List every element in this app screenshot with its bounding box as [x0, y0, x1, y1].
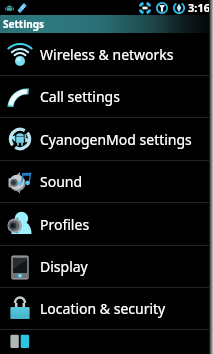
button[interactable]: Profiles [0, 203, 214, 245]
staticText: Location & security [40, 299, 166, 318]
button[interactable]: Location & security [0, 288, 214, 329]
button[interactable]: Wireless & networks [0, 33, 214, 75]
staticText: Sound [40, 172, 83, 191]
staticText: Call settings [40, 87, 120, 106]
staticText: Display [40, 257, 88, 276]
button[interactable]: Display [0, 246, 214, 287]
button[interactable] [0, 330, 214, 354]
button[interactable]: Sound [0, 161, 214, 202]
staticText: Wireless & networks [40, 45, 174, 64]
staticText: Settings [3, 17, 44, 31]
staticText: CyanogenMod settings [40, 130, 192, 149]
button[interactable]: Call settings [0, 76, 214, 117]
staticText: Profiles [40, 215, 90, 234]
button[interactable]: CyanogenMod settings [0, 118, 214, 160]
staticText: 3:16 [188, 0, 210, 15]
